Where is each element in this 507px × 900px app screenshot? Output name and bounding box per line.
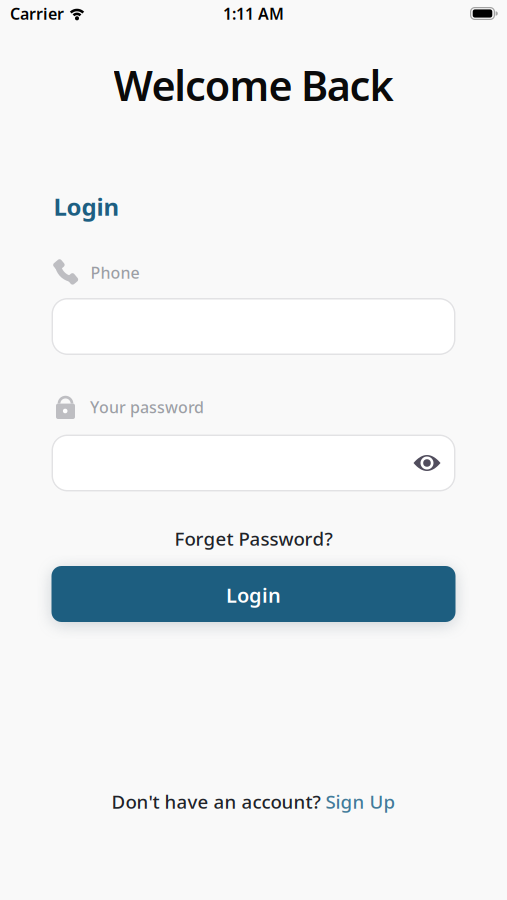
staticText: Login xyxy=(226,582,281,608)
staticText: 1:11 AM xyxy=(223,3,284,24)
button[interactable]: Forget Password? xyxy=(174,526,332,551)
staticText: Sign Up xyxy=(325,789,395,814)
staticText: Don't have an account? xyxy=(111,789,320,814)
staticText: Carrier xyxy=(10,3,64,24)
staticText: Forget Password? xyxy=(174,526,332,551)
staticText: Your password xyxy=(90,396,204,418)
button[interactable]: Sign Up xyxy=(325,789,395,814)
button[interactable]: Phone xyxy=(51,298,455,355)
button[interactable]: Your password xyxy=(51,434,455,491)
button[interactable]: Login xyxy=(51,566,455,622)
button[interactable]: Show password xyxy=(413,453,440,472)
staticText: Phone xyxy=(90,262,139,283)
staticText: Welcome Back xyxy=(114,58,393,112)
staticText: Login xyxy=(53,191,119,222)
